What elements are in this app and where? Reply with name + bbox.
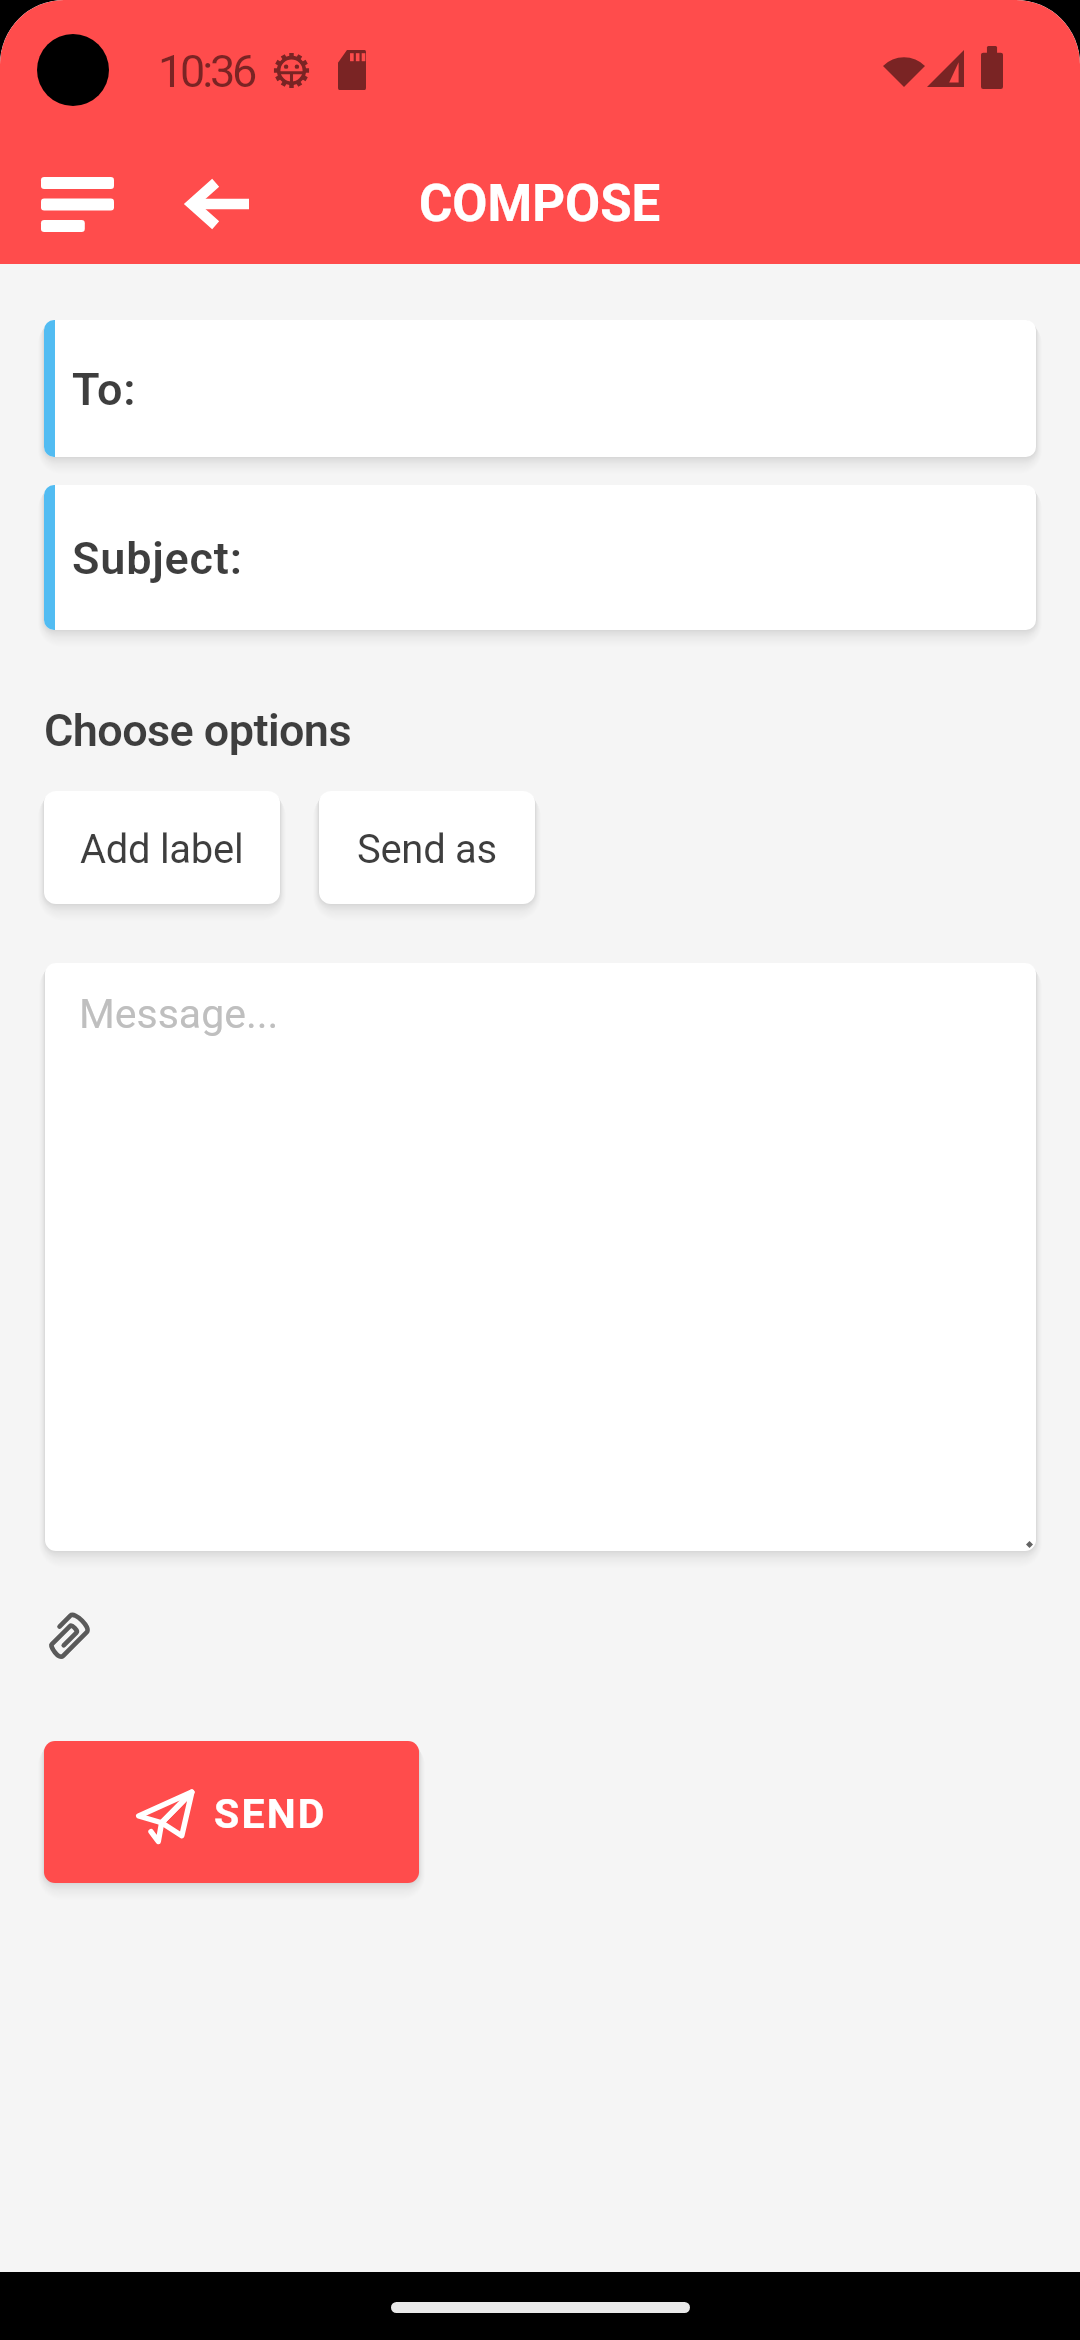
staticText: Choose options — [44, 704, 351, 757]
button[interactable]: Open navigation menu — [18, 153, 136, 251]
button[interactable]: To: — [44, 320, 1036, 457]
button[interactable]: SEND — [44, 1741, 419, 1883]
button[interactable]: Add label — [44, 791, 280, 904]
staticText: To: — [72, 363, 137, 416]
button[interactable]: Send as — [319, 791, 535, 904]
button[interactable]: Subject: — [44, 485, 1036, 630]
button[interactable]: Attach file — [19, 1588, 113, 1682]
staticText: COMPOSE — [419, 174, 661, 234]
staticText: SEND — [214, 1790, 327, 1838]
button[interactable]: Message... — [45, 963, 1036, 1551]
staticText: 10:36 — [158, 45, 255, 98]
staticText: Send as — [357, 826, 497, 873]
staticText: Message... — [79, 990, 279, 1038]
button[interactable]: Navigate back — [167, 154, 267, 250]
staticText: Subject: — [72, 532, 243, 585]
staticText: Add label — [80, 826, 244, 873]
